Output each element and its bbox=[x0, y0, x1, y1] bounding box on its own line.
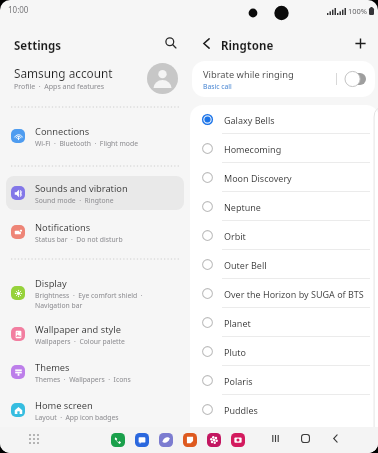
button[interactable]: Notifications bbox=[6, 214, 184, 250]
staticText: Sound mode · Ringtone bbox=[35, 196, 114, 205]
button[interactable]: Pluto bbox=[190, 337, 378, 366]
button[interactable]: Puddles bbox=[190, 395, 378, 424]
button[interactable]: Vibrate while ringing bbox=[192, 61, 375, 97]
button[interactable]: Planet bbox=[190, 308, 378, 337]
button[interactable]: Wallpaper and style bbox=[6, 316, 184, 352]
button[interactable]: Homecoming bbox=[190, 134, 378, 163]
button[interactable]: Recent apps bbox=[267, 430, 283, 446]
button[interactable]: Phone bbox=[111, 433, 125, 447]
button[interactable]: Home screen bbox=[6, 392, 184, 428]
staticText: Wi-Fi · Bluetooth · Flight mode bbox=[35, 139, 138, 148]
staticText: Notifications bbox=[35, 221, 91, 234]
staticText: Ringtone bbox=[221, 38, 274, 54]
staticText: Wallpapers · Colour palette bbox=[35, 337, 125, 346]
staticText: Pluto bbox=[224, 346, 247, 358]
staticText: Brightness · Eye comfort shield · Naviga… bbox=[35, 291, 143, 310]
button[interactable]: Neptune bbox=[190, 192, 378, 221]
staticText: Home screen bbox=[35, 399, 93, 412]
button[interactable]: Apps bbox=[25, 430, 43, 448]
staticText: Moon Discovery bbox=[224, 172, 292, 184]
button[interactable]: Connections bbox=[6, 118, 184, 154]
staticText: Over the Horizon by SUGA of BTS bbox=[224, 288, 364, 300]
button[interactable]: Samsung account bbox=[0, 62, 189, 94]
button[interactable]: Over the Horizon by SUGA of BTS bbox=[190, 279, 378, 308]
staticText: Themes bbox=[35, 361, 70, 374]
staticText: Profile · Apps and features bbox=[14, 82, 105, 92]
button[interactable]: Galaxy Store bbox=[207, 433, 221, 447]
button[interactable]: Outer Bell bbox=[190, 250, 378, 279]
staticText: Planet bbox=[224, 317, 251, 329]
staticText: Polaris bbox=[224, 375, 253, 387]
staticText: 10:00 bbox=[8, 4, 29, 15]
button[interactable]: Back bbox=[327, 430, 343, 446]
button[interactable]: Internet bbox=[159, 433, 173, 447]
staticText: Samsung account bbox=[14, 65, 113, 81]
staticText: Wallpaper and style bbox=[35, 323, 121, 336]
button[interactable]: Back bbox=[192, 29, 220, 57]
staticText: Connections bbox=[35, 125, 90, 138]
staticText: Display bbox=[35, 277, 67, 290]
staticText: Layout · App icon badges bbox=[35, 413, 119, 422]
staticText: 100% bbox=[348, 6, 368, 16]
staticText: Status bar · Do not disturb bbox=[35, 235, 123, 244]
staticText: Themes · Wallpapers · Icons bbox=[35, 375, 131, 384]
staticText: Outer Bell bbox=[224, 259, 267, 271]
button[interactable]: Galaxy Bells bbox=[190, 105, 378, 134]
button[interactable]: Display bbox=[6, 271, 184, 315]
button[interactable]: Home bbox=[297, 430, 313, 446]
staticText: Basic call bbox=[203, 82, 232, 91]
button[interactable]: Notes bbox=[183, 433, 197, 447]
button[interactable]: Search bbox=[157, 29, 185, 57]
button[interactable]: Messages bbox=[135, 433, 149, 447]
staticText: Settings bbox=[14, 38, 62, 54]
button[interactable]: Camera bbox=[231, 433, 245, 447]
staticText: Orbit bbox=[224, 230, 246, 242]
button[interactable]: Sounds and vibration bbox=[6, 176, 184, 210]
staticText: Galaxy Bells bbox=[224, 114, 275, 126]
button[interactable]: Vibrate while ringing toggle bbox=[345, 73, 366, 85]
staticText: Puddles bbox=[224, 404, 258, 416]
staticText: Vibrate while ringing bbox=[203, 68, 294, 81]
button[interactable]: Moon Discovery bbox=[190, 163, 378, 192]
button[interactable]: Orbit bbox=[190, 221, 378, 250]
button[interactable]: Polaris bbox=[190, 366, 378, 395]
staticText: Neptune bbox=[224, 201, 261, 213]
staticText: Sounds and vibration bbox=[35, 182, 128, 195]
staticText: Homecoming bbox=[224, 143, 282, 155]
button[interactable]: Add bbox=[346, 29, 374, 57]
button[interactable]: Themes bbox=[6, 354, 184, 390]
